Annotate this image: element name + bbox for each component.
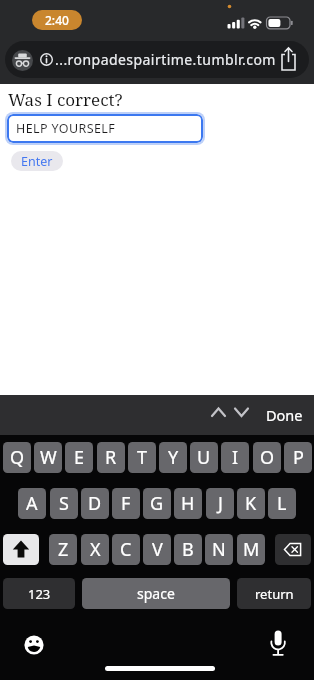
staticText: K	[245, 491, 257, 516]
staticText: A	[26, 491, 38, 516]
staticText: G	[150, 491, 164, 516]
button[interactable]: W	[34, 442, 62, 473]
staticText: W	[40, 445, 57, 470]
button[interactable]	[3, 534, 39, 565]
button[interactable]: X	[81, 534, 109, 565]
button[interactable]: B	[174, 534, 202, 565]
button[interactable]: U	[190, 442, 218, 473]
button[interactable]: K	[237, 488, 265, 519]
staticText: return	[255, 585, 294, 603]
staticText: N	[212, 537, 226, 562]
button[interactable]: G	[143, 488, 171, 519]
staticText: HELP YOURSELF	[16, 120, 116, 137]
staticText: ...ronpadespairtime.tumblr.com	[55, 50, 276, 69]
button[interactable]: 123	[3, 578, 75, 609]
staticText: O	[260, 445, 275, 470]
button[interactable]: N	[205, 534, 233, 565]
button[interactable]: S	[50, 488, 78, 519]
staticText: Q	[10, 445, 25, 470]
button[interactable]: A	[18, 488, 46, 519]
staticText: F	[121, 491, 131, 516]
staticText: U	[197, 445, 211, 470]
staticText: T	[137, 445, 148, 470]
button[interactable]: R	[97, 442, 125, 473]
staticText: D	[88, 491, 102, 516]
staticText: space	[137, 584, 175, 603]
button[interactable]	[264, 628, 292, 656]
button[interactable]: Enter	[11, 151, 63, 171]
button[interactable]: Done	[258, 395, 310, 435]
staticText: X	[90, 537, 101, 562]
staticText: Enter	[21, 153, 53, 170]
staticText: J	[218, 491, 223, 516]
button[interactable]: V	[143, 534, 171, 565]
button[interactable]	[0, 395, 314, 435]
button[interactable]	[275, 534, 311, 565]
staticText: Y	[168, 445, 179, 470]
staticText: Z	[58, 537, 69, 562]
button[interactable]: space	[82, 578, 230, 609]
button[interactable]: M	[237, 534, 265, 565]
button[interactable]: Z	[49, 534, 77, 565]
button[interactable]: E	[65, 442, 93, 473]
button[interactable]: 2:40	[32, 10, 82, 30]
staticText: V	[152, 537, 163, 562]
button[interactable]: return	[237, 578, 311, 609]
staticText: S	[59, 491, 69, 516]
button[interactable]: I	[221, 442, 249, 473]
staticText: I	[232, 445, 239, 470]
staticText: M	[243, 537, 260, 562]
staticText: 123	[28, 585, 51, 603]
button[interactable]	[20, 631, 48, 659]
button[interactable]: H	[174, 488, 202, 519]
staticText: C	[120, 537, 132, 562]
button[interactable]	[5, 41, 309, 78]
staticText: R	[105, 445, 117, 470]
button[interactable]: P	[284, 442, 312, 473]
staticText: E	[74, 445, 85, 470]
staticText: L	[277, 491, 287, 516]
staticText: 2:40	[45, 12, 69, 28]
button[interactable]: F	[112, 488, 140, 519]
button[interactable]: D	[81, 488, 109, 519]
staticText: Done	[266, 405, 303, 425]
staticText: H	[181, 491, 195, 516]
button[interactable]: O	[253, 442, 281, 473]
staticText: Was I correct?	[8, 88, 123, 111]
button[interactable]: C	[112, 534, 140, 565]
button[interactable]: Q	[3, 442, 31, 473]
button[interactable]: L	[268, 488, 296, 519]
button[interactable]: J	[206, 488, 234, 519]
button[interactable]: HELP YOURSELF	[7, 114, 203, 143]
staticText: B	[182, 537, 194, 562]
button[interactable]: Y	[159, 442, 187, 473]
button[interactable]: T	[128, 442, 156, 473]
staticText: P	[293, 445, 304, 470]
